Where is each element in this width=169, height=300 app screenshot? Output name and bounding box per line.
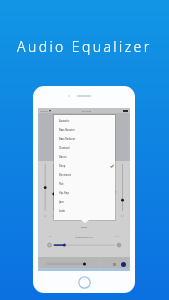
button[interactable]: Classical [54,143,115,152]
button[interactable]: Jazz [54,197,115,206]
staticText: Deep [81,225,88,228]
staticText: Preamplifier 0.0 [75,235,93,238]
button[interactable]: Acoustic [54,116,115,125]
staticText: Classical [59,146,70,149]
staticText: Latin [59,209,66,212]
staticText: Audio Equalizer [17,37,152,56]
staticText: Dance [59,155,67,158]
staticText: +15 [115,235,119,238]
staticText: Bass Reducer [59,137,76,140]
staticText: Electronic [59,173,71,176]
staticText: -15 [48,235,52,238]
button[interactable]: Dance [54,152,115,161]
button[interactable]: Bass Booster [54,125,115,134]
staticText: Jazz [59,200,64,203]
staticText: Flat [59,182,64,185]
staticText: 9:41 PM [82,109,91,112]
button[interactable]: Equalizer [110,260,118,268]
staticText: Acoustic [59,119,70,122]
staticText: Hip-Hop [59,191,69,194]
button[interactable]: Hip-Hop [54,188,115,197]
button[interactable]: Deep [38,222,130,231]
staticText: Carrier [40,109,48,112]
staticText: Bass Booster [59,128,75,131]
button[interactable]: Bass Reducer [54,134,115,143]
staticText: Deep [59,164,66,167]
button[interactable]: Electronic [54,170,115,179]
button[interactable]: Flat [54,179,115,188]
button[interactable]: Home [78,276,91,289]
button[interactable]: Settings [119,260,127,268]
button[interactable]: Deep [54,161,115,170]
button[interactable]: Latin [54,206,115,215]
